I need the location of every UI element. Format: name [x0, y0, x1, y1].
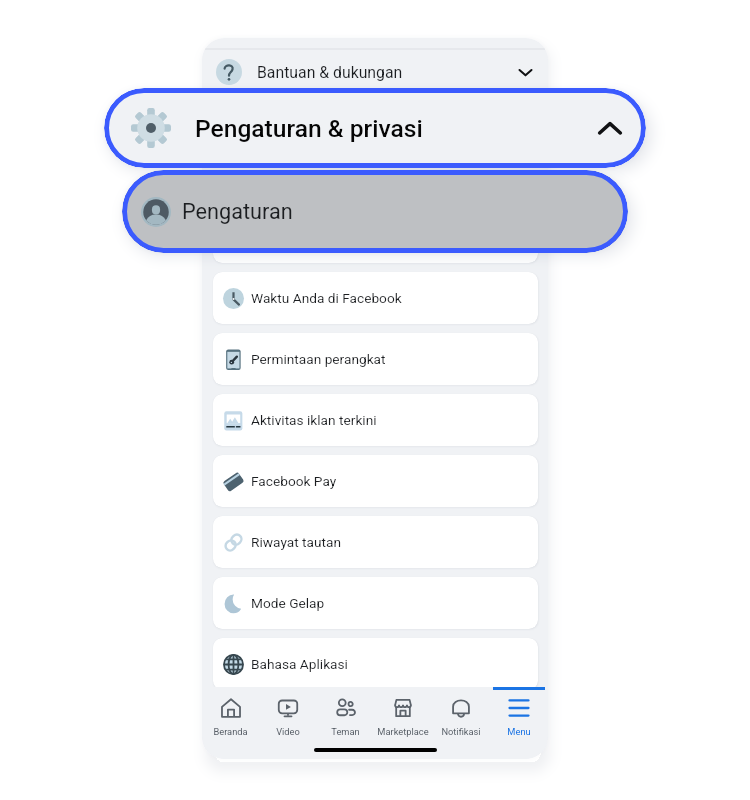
staticText: Waktu Anda di Facebook [251, 290, 402, 306]
button[interactable]: Pengaturan [122, 170, 628, 253]
staticText: Mode Gelap [251, 595, 325, 611]
button[interactable]: Teman [316, 687, 374, 739]
staticText: Aktivitas iklan terkini [251, 412, 377, 428]
button[interactable]: Pengaturan & privasi [104, 88, 646, 168]
staticText: Notifikasi [441, 726, 481, 737]
button[interactable]: Permintaan perangkat [213, 333, 538, 385]
button[interactable]: Menu [490, 687, 548, 739]
staticText: Permintaan perangkat [251, 351, 386, 367]
staticText: Facebook Pay [251, 473, 337, 489]
button[interactable]: Bantuan & dukungan [202, 48, 548, 96]
button[interactable]: Waktu Anda di Facebook [213, 272, 538, 324]
button[interactable]: Notifikasi [432, 687, 490, 739]
button[interactable]: Pengaturan [213, 211, 538, 263]
button[interactable]: Beranda [202, 687, 259, 739]
staticText: Pengaturan & privasi [195, 114, 423, 143]
button[interactable]: Facebook Pay [213, 455, 538, 507]
staticText: Pengaturan [182, 199, 293, 224]
staticText: Bantuan & dukungan [257, 63, 403, 82]
staticText: Pengaturan & privasi [257, 119, 402, 138]
button[interactable]: Marketplace [374, 687, 432, 739]
staticText: Teman [331, 726, 360, 737]
button[interactable]: Pengaturan & privasi [202, 104, 548, 152]
staticText: Beranda [213, 726, 248, 737]
staticText: Marketplace [377, 726, 429, 737]
button[interactable]: Aktivitas iklan terkini [213, 394, 538, 446]
staticText: Menu [507, 726, 531, 737]
button[interactable]: Mode Gelap [213, 577, 538, 629]
staticText: Riwayat tautan [251, 534, 342, 550]
button[interactable]: Bahasa Aplikasi [213, 638, 538, 690]
staticText: Video [276, 726, 300, 737]
button[interactable]: Riwayat tautan [213, 516, 538, 568]
staticText: Bahasa Aplikasi [251, 656, 348, 672]
button[interactable]: Video [259, 687, 316, 739]
